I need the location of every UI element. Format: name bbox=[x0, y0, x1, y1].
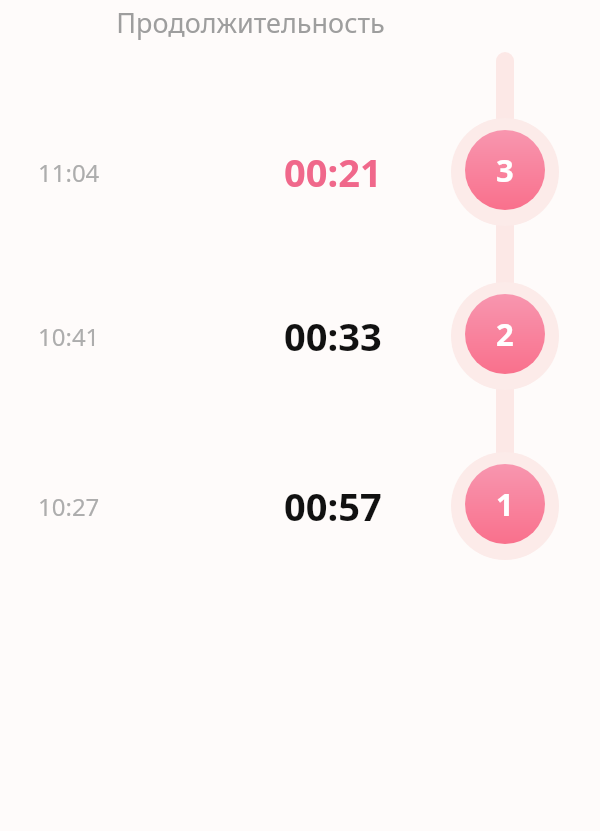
staticText: 2 bbox=[496, 313, 514, 355]
button[interactable]: Круг 1 bbox=[463, 464, 547, 544]
staticText: 00:33 bbox=[284, 310, 382, 362]
staticText: 3 bbox=[496, 149, 514, 191]
staticText: Продолжительность bbox=[116, 4, 385, 41]
button[interactable]: 10:41 bbox=[0, 296, 600, 376]
button[interactable]: 11:04 bbox=[0, 132, 600, 212]
button[interactable]: Круг 2 bbox=[463, 294, 547, 374]
staticText: 10:41 bbox=[38, 320, 100, 353]
staticText: 00:21 bbox=[284, 146, 382, 198]
staticText: 10:27 bbox=[38, 490, 100, 523]
staticText: 1 bbox=[496, 483, 514, 525]
staticText: 00:57 bbox=[284, 480, 382, 532]
button[interactable]: Круг 3 bbox=[463, 130, 547, 210]
button[interactable]: 10:27 bbox=[0, 466, 600, 546]
staticText: 11:04 bbox=[38, 156, 100, 189]
button[interactable]: Продолжительность bbox=[0, 2, 500, 42]
